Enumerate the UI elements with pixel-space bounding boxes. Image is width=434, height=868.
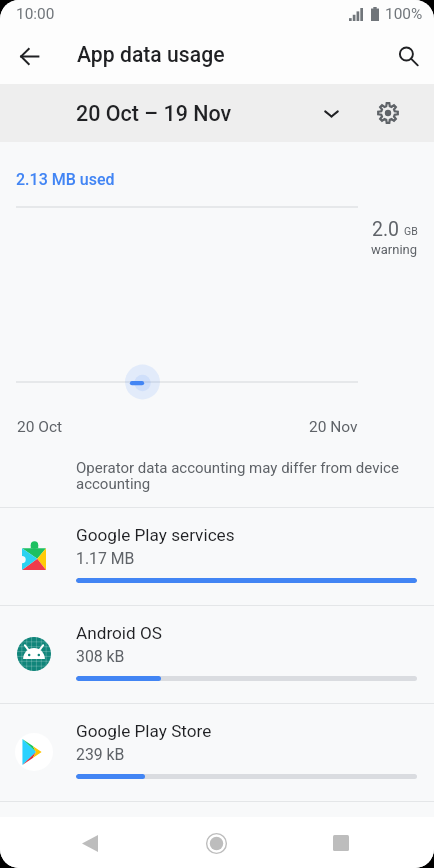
button[interactable]: Google Play Store bbox=[0, 704, 434, 801]
button[interactable]: Change date range bbox=[313, 95, 349, 131]
button[interactable]: Back bbox=[8, 35, 50, 77]
staticText: 20 Nov bbox=[309, 418, 358, 436]
staticText: 10:00 bbox=[16, 5, 55, 23]
staticText: 2.13 MB used bbox=[16, 170, 115, 189]
button[interactable]: Settings bbox=[370, 95, 406, 131]
staticText: warning bbox=[371, 242, 418, 257]
staticText: 1.17 MB bbox=[76, 549, 135, 568]
staticText: Google Play services bbox=[76, 525, 235, 545]
staticText: 20 Oct bbox=[17, 418, 63, 436]
button[interactable]: Google Play services bbox=[0, 508, 434, 605]
staticText: Google Play Store bbox=[76, 721, 212, 741]
button[interactable]: 20 Oct – 19 Nov bbox=[0, 84, 352, 142]
button[interactable]: Home bbox=[192, 819, 240, 867]
staticText: 308 kB bbox=[76, 647, 125, 666]
button[interactable]: Back bbox=[66, 819, 114, 867]
button[interactable]: Search bbox=[387, 35, 429, 77]
staticText: App data usage bbox=[77, 42, 225, 67]
button[interactable]: Android OS bbox=[0, 606, 434, 703]
staticText: 20 Oct – 19 Nov bbox=[76, 101, 232, 126]
staticText: 2.0 bbox=[372, 218, 400, 241]
staticText: 239 kB bbox=[76, 745, 125, 764]
staticText: Android OS bbox=[76, 623, 163, 643]
staticText: Operator data accounting may differ from… bbox=[76, 459, 401, 493]
staticText: GB bbox=[404, 225, 418, 237]
staticText: 100% bbox=[385, 5, 423, 23]
button[interactable]: Recent apps bbox=[317, 819, 365, 867]
